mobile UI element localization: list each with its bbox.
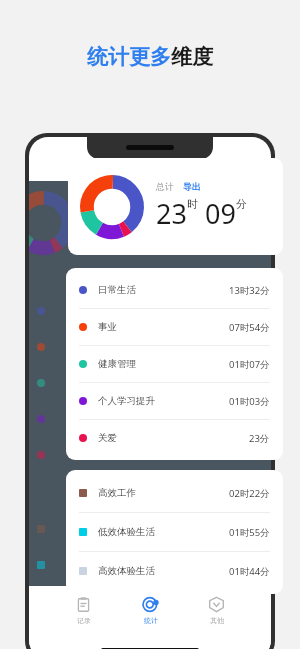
staticText: 关爱	[98, 432, 117, 444]
button[interactable]: 高效工作	[66, 474, 283, 512]
button[interactable]: 总计	[68, 158, 283, 255]
button[interactable]: 个人学习提升	[66, 383, 283, 419]
staticText: 总计	[156, 181, 174, 192]
staticText: 23	[156, 195, 187, 232]
button[interactable]: 导出	[183, 181, 201, 192]
staticText: 01时07分	[229, 358, 270, 371]
staticText: 统计更多	[87, 44, 171, 70]
staticText: 日常生活	[98, 284, 136, 296]
staticText: 09	[205, 195, 236, 232]
staticText: 高效体验生活	[98, 565, 155, 577]
staticText: 01时44分	[229, 565, 270, 578]
button[interactable]: 高效体验生活	[66, 552, 283, 590]
staticText: 01时55分	[229, 526, 270, 539]
button[interactable]: 其他	[204, 592, 229, 629]
staticText: 统计	[144, 616, 158, 625]
button[interactable]: 记录	[71, 592, 96, 629]
button[interactable]: 健康管理	[66, 346, 283, 382]
button[interactable]: 事业	[66, 309, 283, 345]
staticText: 其他	[210, 616, 224, 625]
button[interactable]: 统计	[138, 592, 163, 629]
staticText: 维度	[171, 44, 213, 70]
staticText: 时	[187, 197, 198, 211]
staticText: 健康管理	[98, 358, 136, 370]
staticText: 13时32分	[229, 284, 270, 297]
button[interactable]: 关爱	[66, 420, 283, 456]
staticText: 导出	[183, 181, 201, 192]
button[interactable]: 低效体验生活	[66, 513, 283, 551]
staticText: 01时03分	[229, 395, 270, 408]
staticText: 分	[236, 197, 247, 211]
staticText: 个人学习提升	[98, 395, 155, 407]
staticText: 高效工作	[98, 487, 136, 499]
staticText: 低效体验生活	[98, 526, 155, 538]
staticText: 02时22分	[229, 487, 270, 500]
staticText: 事业	[98, 321, 117, 333]
staticText: 记录	[77, 616, 91, 625]
staticText: 23分	[249, 432, 270, 445]
staticText: 07时54分	[229, 321, 270, 334]
button[interactable]: 日常生活	[66, 272, 283, 308]
